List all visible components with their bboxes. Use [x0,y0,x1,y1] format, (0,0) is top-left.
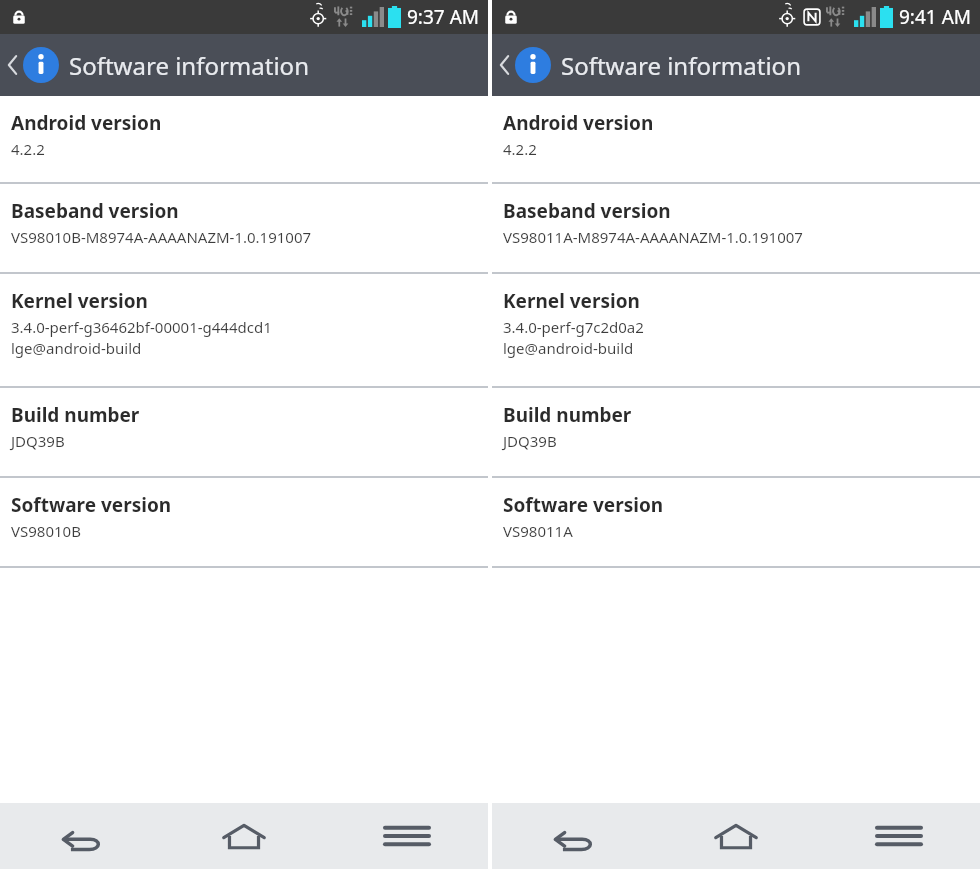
button[interactable]: Android version [0,96,488,182]
staticText: Kernel version [503,288,640,314]
button[interactable]: Baseband version [492,184,980,272]
staticText: 3.4.0-perf-g7c2d0a2 [503,317,644,337]
staticText: lge@android-build [11,338,142,358]
button[interactable]: Software version [492,478,980,566]
staticText: JDQ39B [11,431,65,451]
button[interactable]: Home [162,803,325,869]
staticText: 4.2.2 [11,139,45,159]
staticText: Software version [11,492,172,518]
button[interactable]: Software version [0,478,488,566]
staticText: Android version [11,110,162,136]
staticText: Build number [11,402,140,428]
staticText: Baseband version [11,198,179,224]
button[interactable]: Menu [817,803,980,869]
staticText: Kernel version [11,288,148,314]
staticText: Software version [503,492,664,518]
staticText: 3.4.0-perf-g36462bf-00001-g444dcd1 [11,317,272,337]
staticText: VS98011A [503,521,573,541]
button[interactable]: Android version [492,96,980,182]
button[interactable]: Back [492,803,654,869]
staticText: VS98011A-M8974A-AAAANAZM-1.0.191007 [503,227,803,247]
button[interactable]: Kernel version [492,274,980,386]
staticText: Android version [503,110,654,136]
staticText: 4.2.2 [503,139,537,159]
button[interactable]: Baseband version [0,184,488,272]
staticText: Build number [503,402,632,428]
button[interactable]: Back to Software information [0,34,488,96]
button[interactable]: Back [0,803,162,869]
staticText: VS98010B-M8974A-AAAANAZM-1.0.191007 [11,227,312,247]
staticText: lge@android-build [503,338,634,358]
staticText: 9:37 AM [407,4,480,30]
staticText: Software information [69,49,309,82]
button[interactable]: Menu [325,803,488,869]
staticText: VS98010B [11,521,81,541]
staticText: JDQ39B [503,431,557,451]
staticText: Software information [561,49,801,82]
button[interactable]: Back to Software information [492,34,980,96]
button[interactable]: Build number [492,388,980,476]
button[interactable]: Build number [0,388,488,476]
button[interactable]: Kernel version [0,274,488,386]
staticText: 9:41 AM [899,4,972,30]
button[interactable]: Home [654,803,817,869]
staticText: Baseband version [503,198,671,224]
